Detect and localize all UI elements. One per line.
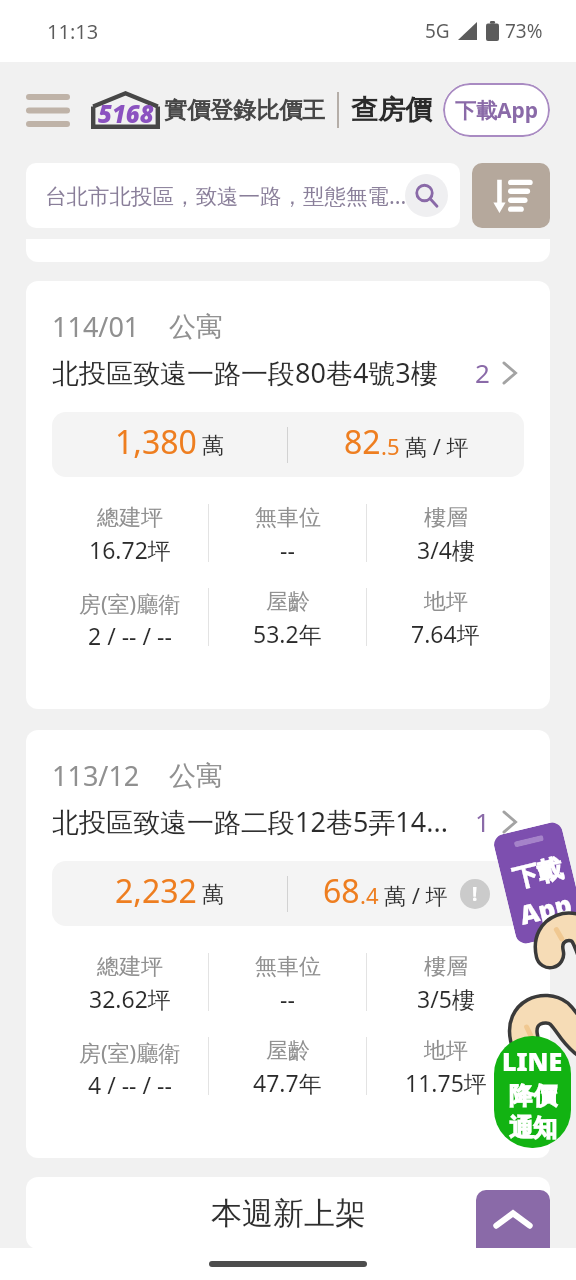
staticText: 通知 (509, 1113, 557, 1143)
staticText: 114/01 (52, 308, 140, 345)
staticText: .5 (381, 431, 400, 461)
staticText: 實價登錄比價王 (164, 96, 325, 125)
staticText: 屋齡 (266, 588, 310, 616)
button[interactable]: Scroll to top (476, 1190, 550, 1248)
button[interactable]: Info (460, 879, 490, 909)
staticText: 樓層 (424, 953, 468, 981)
staticText: 總建坪 (97, 504, 163, 532)
staticText: 7.64坪 (411, 618, 480, 646)
staticText: 總建坪 (97, 953, 163, 981)
staticText: 萬 / 坪 (405, 431, 469, 461)
staticText: 萬 (202, 881, 224, 909)
button[interactable]: 114/01 (26, 281, 550, 709)
staticText: 下載App (455, 96, 539, 125)
staticText: -- (280, 983, 295, 1011)
staticText: 47.7年 (253, 1067, 322, 1095)
staticText: 2,232 (115, 869, 197, 913)
staticText: 2 / -- / -- (88, 620, 172, 646)
button[interactable]: 台北市北投區，致遠一路，型態無電... (26, 163, 460, 228)
button[interactable]: Sort (472, 163, 550, 228)
staticText: 3/5樓 (417, 983, 475, 1011)
staticText: 1,380 (115, 420, 197, 464)
staticText: 3/4樓 (417, 534, 475, 562)
staticText: 2 (475, 355, 490, 390)
staticText: 屋齡 (266, 1037, 310, 1065)
staticText: 無車位 (255, 953, 321, 981)
staticText: 4 / -- / -- (88, 1069, 172, 1095)
staticText: 地坪 (424, 588, 468, 616)
staticText: 萬 / 坪 (384, 880, 448, 910)
staticText: 房(室)廳衛 (79, 588, 181, 618)
button[interactable]: Download App (492, 820, 576, 946)
staticText: 5G (425, 18, 450, 44)
button[interactable]: LINE price alert (494, 1036, 571, 1148)
staticText: 113/12 (52, 757, 140, 794)
staticText: 房(室)廳衛 (79, 1037, 181, 1067)
staticText: 68 (323, 869, 360, 913)
staticText: 11:13 (47, 18, 99, 45)
staticText: 73% (505, 18, 543, 44)
staticText: 1 (475, 804, 490, 839)
staticText: LINE (502, 1044, 563, 1078)
staticText: 北投區致遠一路二段12巷5弄14... (52, 803, 475, 840)
staticText: 5168 (98, 97, 154, 130)
staticText: 公寓 (169, 759, 223, 793)
staticText: 11.75坪 (405, 1067, 487, 1095)
staticText: 本週新上架 (211, 1194, 366, 1233)
staticText: 下載 (510, 853, 566, 894)
staticText: 查房價 (351, 93, 432, 127)
staticText: 無車位 (255, 504, 321, 532)
staticText: 台北市北投區，致遠一路，型態無電... (45, 181, 407, 210)
staticText: 地坪 (424, 1037, 468, 1065)
staticText: App (516, 885, 575, 932)
staticText: 82 (344, 420, 381, 464)
staticText: 公寓 (169, 310, 223, 344)
staticText: 32.62坪 (89, 983, 171, 1011)
button[interactable]: 下載App (443, 83, 550, 137)
staticText: 北投區致遠一路一段80巷4號3樓 (52, 354, 475, 391)
staticText: 16.72坪 (89, 534, 171, 562)
staticText: .4 (360, 880, 379, 910)
button[interactable]: Menu (20, 82, 76, 138)
staticText: 53.2年 (253, 618, 322, 646)
staticText: 樓層 (424, 504, 468, 532)
button[interactable]: Search (405, 174, 448, 217)
button[interactable]: 113/12 (26, 730, 550, 1158)
staticText: 降價 (509, 1081, 557, 1111)
staticText: ! (472, 881, 478, 907)
staticText: 萬 (202, 432, 224, 460)
staticText: -- (280, 534, 295, 562)
button[interactable]: 本週新上架 (26, 1177, 550, 1249)
